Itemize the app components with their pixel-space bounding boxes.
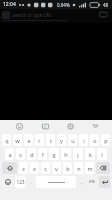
- button[interactable]: Emoji: [14, 121, 25, 132]
- button[interactable]: Settings: [65, 121, 76, 132]
- button[interactable]: t: [46, 134, 55, 146]
- staticText: a: [8, 151, 12, 158]
- staticText: c: [44, 165, 47, 172]
- button[interactable]: r: [35, 134, 44, 146]
- button[interactable]: a: [5, 148, 14, 160]
- staticText: y: [60, 137, 63, 144]
- button[interactable]: p: [101, 134, 110, 146]
- button[interactable]: c: [41, 162, 50, 174]
- button[interactable]: Options: [99, 11, 108, 18]
- button[interactable]: Enter: [99, 176, 110, 188]
- staticText: o: [93, 137, 97, 144]
- button[interactable]: Clipboard: [40, 121, 51, 132]
- staticText: n: [77, 165, 81, 172]
- staticText: ,: [81, 179, 83, 186]
- button[interactable]: k: [85, 148, 95, 160]
- staticText: p: [104, 137, 108, 144]
- button[interactable]: s: [16, 148, 25, 160]
- staticText: m: [87, 165, 93, 172]
- button[interactable]: EN: [87, 176, 97, 188]
- button[interactable]: f: [38, 148, 47, 160]
- button[interactable]: Emoji: [2, 176, 13, 188]
- button[interactable]: u: [68, 134, 77, 146]
- staticText: 48: [103, 2, 109, 8]
- staticText: Search or type URL: [12, 12, 53, 18]
- staticText: g: [52, 151, 56, 158]
- button[interactable]: 123: [15, 176, 25, 188]
- button[interactable]: e: [24, 134, 33, 146]
- staticText: EN: [89, 179, 95, 185]
- staticText: u: [71, 137, 75, 144]
- button[interactable]: w: [13, 134, 22, 146]
- button[interactable]: z: [19, 162, 28, 174]
- button[interactable]: n: [74, 162, 83, 174]
- button[interactable]: q: [2, 134, 11, 146]
- staticText: d: [30, 151, 34, 158]
- button[interactable]: .: [27, 176, 34, 188]
- button[interactable]: Profile: [2, 11, 10, 19]
- button[interactable]: y: [57, 134, 66, 146]
- staticText: r: [38, 137, 41, 144]
- staticText: x: [33, 165, 36, 172]
- staticText: 12:04: [3, 1, 16, 8]
- button[interactable]: x: [30, 162, 39, 174]
- staticText: t: [50, 137, 52, 144]
- button[interactable]: l: [97, 148, 107, 160]
- button[interactable]: m: [85, 162, 94, 174]
- button[interactable]: j: [73, 148, 83, 160]
- staticText: .: [30, 179, 32, 186]
- button[interactable]: h: [61, 148, 71, 160]
- staticText: w: [15, 137, 20, 144]
- staticText: v: [55, 165, 58, 172]
- button[interactable]: o: [90, 134, 99, 146]
- button[interactable]: v: [52, 162, 61, 174]
- staticText: z: [22, 165, 25, 172]
- staticText: b: [66, 165, 70, 172]
- staticText: s: [19, 151, 22, 158]
- staticText: e: [27, 137, 31, 144]
- staticText: i: [83, 137, 85, 144]
- button[interactable]: d: [27, 148, 36, 160]
- button[interactable]: i: [79, 134, 88, 146]
- staticText: k: [89, 151, 92, 158]
- button[interactable]: ,: [78, 176, 85, 188]
- button[interactable]: Hide keyboard: [90, 121, 101, 132]
- button[interactable]: Shift: [2, 162, 17, 174]
- staticText: l: [101, 151, 103, 158]
- button[interactable]: Backspace: [96, 162, 110, 174]
- staticText: f: [42, 151, 44, 158]
- staticText: 0.94%: [57, 2, 70, 8]
- button[interactable]: g: [49, 148, 59, 160]
- button[interactable]: Space: [36, 176, 76, 188]
- staticText: j: [77, 151, 79, 158]
- staticText: h: [64, 151, 68, 158]
- staticText: 123: [16, 179, 25, 186]
- button[interactable]: b: [63, 162, 72, 174]
- staticText: q: [5, 137, 9, 144]
